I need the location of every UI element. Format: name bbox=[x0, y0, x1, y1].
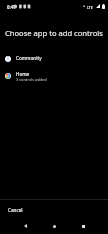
button[interactable]: Home bbox=[45, 217, 63, 234]
staticText: 6:47 bbox=[7, 4, 16, 10]
staticText: Home bbox=[16, 71, 30, 77]
button[interactable]: Recent apps bbox=[74, 217, 92, 234]
staticText: Choose app to add controls bbox=[5, 28, 103, 38]
button[interactable]: Cancel bbox=[0, 202, 108, 218]
staticText: Community bbox=[16, 55, 42, 61]
staticText: LTE bbox=[87, 5, 93, 10]
staticText: 3 controls added bbox=[16, 77, 47, 82]
button[interactable]: Back bbox=[16, 217, 34, 234]
button[interactable]: Community bbox=[0, 50, 108, 67]
staticText: Cancel bbox=[8, 207, 23, 213]
button[interactable]: Home bbox=[0, 68, 108, 85]
